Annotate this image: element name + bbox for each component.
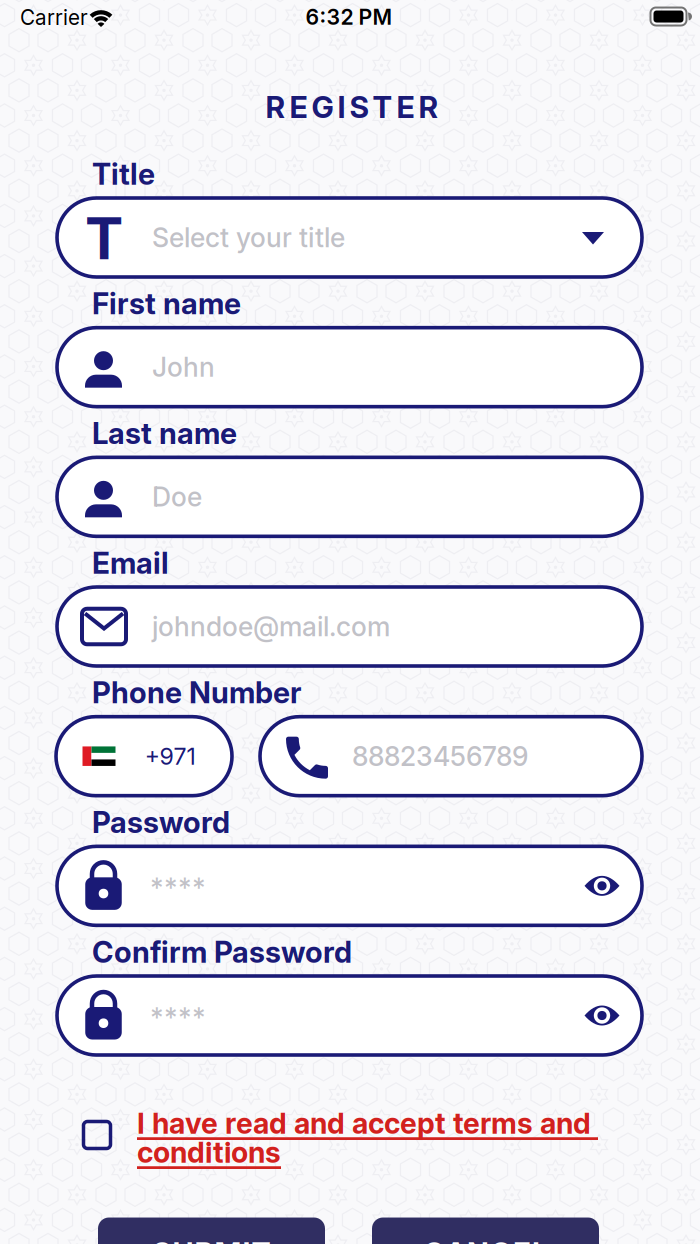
staticText: Last name	[92, 416, 237, 451]
button[interactable]: Select your title	[57, 198, 642, 277]
button[interactable]: Show confirm password	[581, 1000, 623, 1030]
staticText: Select your title	[152, 221, 345, 254]
staticText: REGISTER	[265, 89, 438, 125]
button[interactable]: I have read and accept terms and	[137, 1106, 697, 1172]
staticText: ****	[150, 1001, 206, 1034]
staticText: Confirm Password	[92, 934, 352, 970]
staticText: Carrier	[20, 5, 88, 30]
button[interactable]: Show password	[581, 871, 623, 901]
staticText: Password	[92, 805, 230, 840]
staticText: conditions	[137, 1135, 281, 1170]
staticText: johndoe@mail.com	[152, 610, 390, 643]
staticText: Email	[92, 545, 169, 581]
staticText: Phone Number	[92, 675, 302, 710]
button[interactable]: CANCEL	[372, 1217, 599, 1244]
staticText: +971	[144, 742, 195, 770]
button[interactable]: Accept terms and conditions	[83, 1121, 110, 1148]
staticText: SUBMIT	[152, 1236, 270, 1244]
staticText: CANCEL	[423, 1236, 548, 1244]
button[interactable]: SUBMIT	[98, 1217, 325, 1244]
staticText: ****	[150, 872, 206, 904]
staticText: 6:32 PM	[305, 4, 392, 30]
staticText: I have read and accept terms and	[137, 1106, 598, 1141]
staticText: T	[85, 204, 123, 273]
staticText: John	[152, 351, 215, 383]
staticText: 88823456789	[352, 740, 528, 772]
staticText: Title	[92, 156, 155, 192]
button[interactable]: Country code +971	[56, 717, 232, 796]
staticText: First name	[92, 286, 241, 321]
staticText: Doe	[152, 481, 202, 513]
